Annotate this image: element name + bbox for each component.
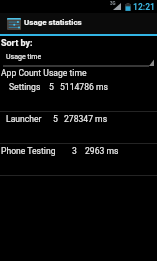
staticText: Launcher [6,114,42,124]
button[interactable]: Phone Testing [0,144,157,176]
staticText: 3 [72,146,77,156]
staticText: App Count Usage time [1,68,87,78]
button[interactable]: Launcher [0,112,157,144]
staticText: 3G [110,1,116,6]
staticText: Sort by: [1,38,33,49]
staticText: Settings [9,82,41,92]
staticText: Phone Testing [1,146,56,156]
button[interactable]: Settings app icon [5,14,23,34]
button[interactable]: Settings [0,80,157,112]
staticText: 12:21 [133,2,155,12]
staticText: Usage time [6,53,42,61]
staticText: 5 [53,114,58,124]
staticText: 5114786 ms [60,82,108,92]
staticText: 278347 ms [64,114,108,124]
staticText: 2963 ms [85,146,119,156]
staticText: Usage statistics [24,18,82,27]
staticText: 5 [49,82,54,92]
button[interactable]: Usage time [0,49,157,67]
